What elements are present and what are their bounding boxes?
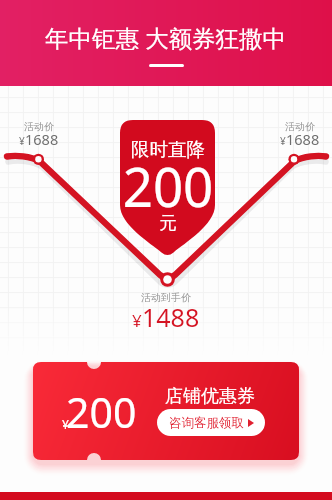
staticText: 元 xyxy=(159,212,177,234)
staticText: ¥ xyxy=(280,134,286,148)
staticText: ¥ xyxy=(62,416,69,432)
staticText: 年中钜惠 大额券狂撒中 xyxy=(45,22,287,54)
staticText: 咨询客服领取 xyxy=(169,415,244,431)
staticText: 1688 xyxy=(286,129,320,149)
staticText: 限时直降 xyxy=(131,138,205,161)
staticText: 店铺优惠券 xyxy=(165,385,255,408)
button[interactable]: ¥ xyxy=(33,362,299,460)
staticText: ¥ xyxy=(19,134,25,148)
staticText: ¥ xyxy=(132,309,142,332)
staticText: 200 xyxy=(122,149,214,223)
staticText: 1688 xyxy=(25,129,59,149)
staticText: 活动价 xyxy=(285,120,315,133)
staticText: 200 xyxy=(66,384,137,440)
staticText: 1488 xyxy=(142,300,200,334)
staticText: 活动到手价 xyxy=(141,291,191,304)
staticText: 活动价 xyxy=(24,120,54,133)
button[interactable]: 咨询客服领取 xyxy=(157,409,265,436)
